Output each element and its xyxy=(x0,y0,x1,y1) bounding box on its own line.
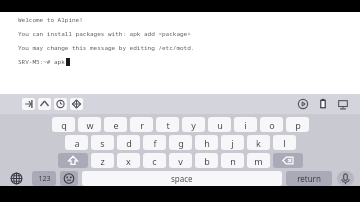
staticText: Welcome to Alpine! xyxy=(18,16,83,24)
staticText: r xyxy=(140,119,144,131)
staticText: y xyxy=(191,119,196,131)
staticText: 123 xyxy=(38,174,51,184)
button[interactable]: s xyxy=(91,135,114,150)
button[interactable]: o xyxy=(260,117,283,132)
button[interactable]: g xyxy=(169,135,192,150)
button[interactable]: Emoji xyxy=(60,171,78,186)
button[interactable]: Hide keyboard xyxy=(336,97,350,111)
button[interactable]: Dictate xyxy=(337,171,354,186)
button[interactable]: Language xyxy=(9,171,24,186)
button[interactable]: b xyxy=(195,153,218,168)
button[interactable]: w xyxy=(78,117,101,132)
button[interactable]: y xyxy=(182,117,205,132)
button[interactable]: Paste xyxy=(316,97,330,111)
button[interactable]: m xyxy=(247,153,270,168)
button[interactable]: j xyxy=(221,135,244,150)
staticText: e xyxy=(113,119,119,131)
button[interactable]: Tab xyxy=(22,98,35,110)
staticText: u xyxy=(217,119,223,131)
button[interactable]: t xyxy=(156,117,179,132)
staticText: t xyxy=(166,119,170,131)
button[interactable]: 123 xyxy=(32,171,56,186)
staticText: a xyxy=(74,137,80,149)
button[interactable]: Control xyxy=(38,98,51,110)
staticText: return xyxy=(297,173,321,184)
staticText: o xyxy=(269,119,275,131)
staticText: n xyxy=(230,155,236,167)
staticText: k xyxy=(256,137,261,149)
staticText: c xyxy=(152,155,157,167)
button[interactable]: x xyxy=(117,153,140,168)
button[interactable]: d xyxy=(117,135,140,150)
staticText: s xyxy=(100,137,105,149)
button[interactable]: k xyxy=(247,135,270,150)
staticText: f xyxy=(153,137,157,149)
button[interactable]: q xyxy=(52,117,75,132)
button[interactable]: Shift xyxy=(58,153,88,168)
staticText: d xyxy=(126,137,132,149)
button[interactable]: v xyxy=(169,153,192,168)
staticText: l xyxy=(283,137,286,149)
button[interactable]: Arrow keys xyxy=(70,98,83,110)
staticText: z xyxy=(100,155,105,167)
staticText: i xyxy=(244,119,247,131)
staticText: g xyxy=(178,137,184,149)
button[interactable]: c xyxy=(143,153,166,168)
button[interactable]: a xyxy=(65,135,88,150)
staticText: SRV-M5:~# apk xyxy=(18,58,65,66)
button[interactable]: e xyxy=(104,117,127,132)
button[interactable]: return xyxy=(286,171,332,186)
staticText: m xyxy=(254,155,263,167)
button[interactable]: Run xyxy=(296,97,310,111)
staticText: You may change this message by editing /… xyxy=(18,44,195,52)
button[interactable]: h xyxy=(195,135,218,150)
staticText: v xyxy=(178,155,183,167)
staticText: w xyxy=(86,119,94,131)
button[interactable]: f xyxy=(143,135,166,150)
staticText: j xyxy=(231,137,234,149)
staticText: p xyxy=(295,119,301,131)
staticText: space xyxy=(171,173,193,184)
button[interactable]: n xyxy=(221,153,244,168)
staticText: q xyxy=(61,119,67,131)
button[interactable]: i xyxy=(234,117,257,132)
button[interactable]: History xyxy=(54,98,67,110)
staticText: x xyxy=(126,155,131,167)
button[interactable]: Backspace xyxy=(273,153,303,168)
button[interactable]: p xyxy=(286,117,309,132)
staticText: You can install packages with: apk add <… xyxy=(18,30,191,38)
button[interactable]: u xyxy=(208,117,231,132)
staticText: h xyxy=(204,137,210,149)
staticText: b xyxy=(204,155,210,167)
button[interactable]: l xyxy=(273,135,296,150)
button[interactable]: space xyxy=(82,171,282,186)
button[interactable]: r xyxy=(130,117,153,132)
button[interactable]: z xyxy=(91,153,114,168)
